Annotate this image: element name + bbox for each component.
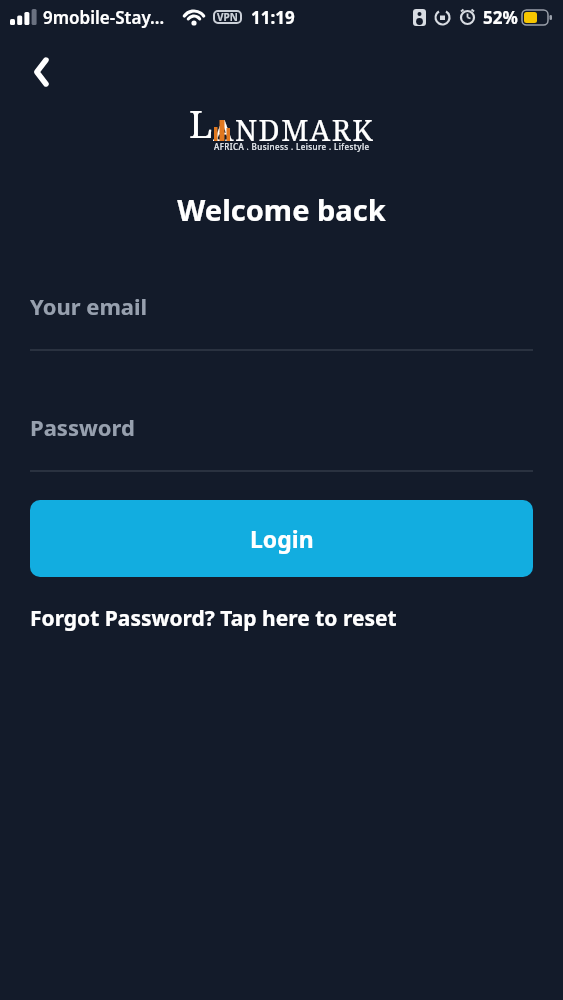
- staticText: 9mobile-Stay...: [43, 6, 165, 29]
- staticText: Password: [30, 412, 135, 442]
- button[interactable]: Forgot Password? Tap here to reset: [30, 604, 397, 633]
- staticText: ANDMARK: [213, 110, 375, 149]
- staticText: Login: [250, 523, 314, 554]
- button[interactable]: Login: [30, 500, 533, 577]
- staticText: VPN: [217, 10, 238, 24]
- staticText: L: [189, 97, 213, 149]
- staticText: 52%: [483, 6, 518, 29]
- staticText: AFRICA . Business . Leisure . Lifestyle: [214, 141, 370, 152]
- button[interactable]: [24, 54, 60, 90]
- staticText: 11:19: [251, 6, 295, 29]
- staticText: Welcome back: [0, 190, 563, 229]
- staticText: Your email: [30, 291, 148, 321]
